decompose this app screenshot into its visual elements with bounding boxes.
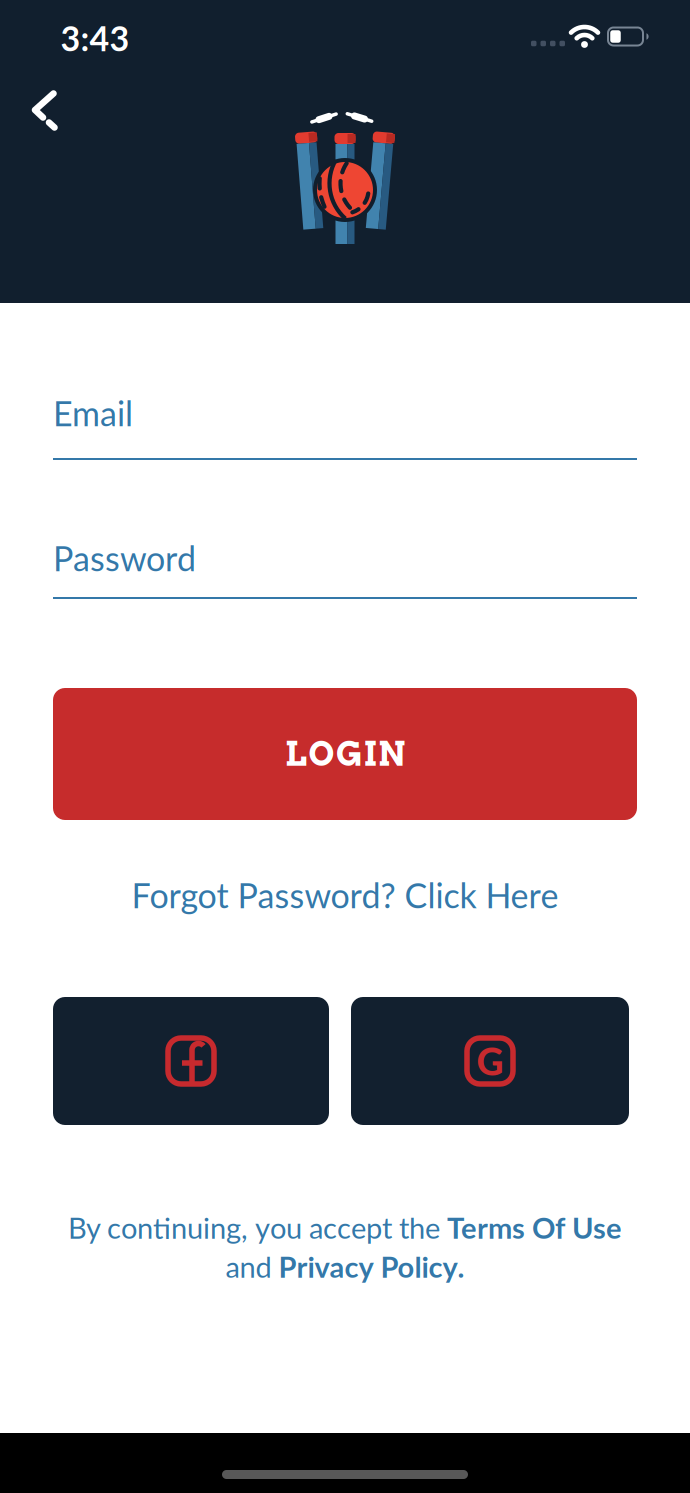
staticText: G xyxy=(476,1039,503,1083)
staticText: 3:43 xyxy=(60,18,129,58)
staticText: Password xyxy=(53,538,196,578)
staticText: Email xyxy=(53,393,133,433)
staticText: By continuing, you accept the Terms Of U… xyxy=(68,1210,622,1245)
staticText: LOGIN xyxy=(285,734,405,774)
staticText: and Privacy Policy. xyxy=(225,1249,464,1284)
button[interactable]: LOGIN xyxy=(53,688,637,820)
button[interactable]: G xyxy=(351,997,629,1125)
button[interactable]: Forgot Password? Click Here xyxy=(53,873,637,917)
staticText: Forgot Password? Click Here xyxy=(131,875,558,915)
button[interactable] xyxy=(22,88,66,132)
button[interactable] xyxy=(53,997,329,1125)
